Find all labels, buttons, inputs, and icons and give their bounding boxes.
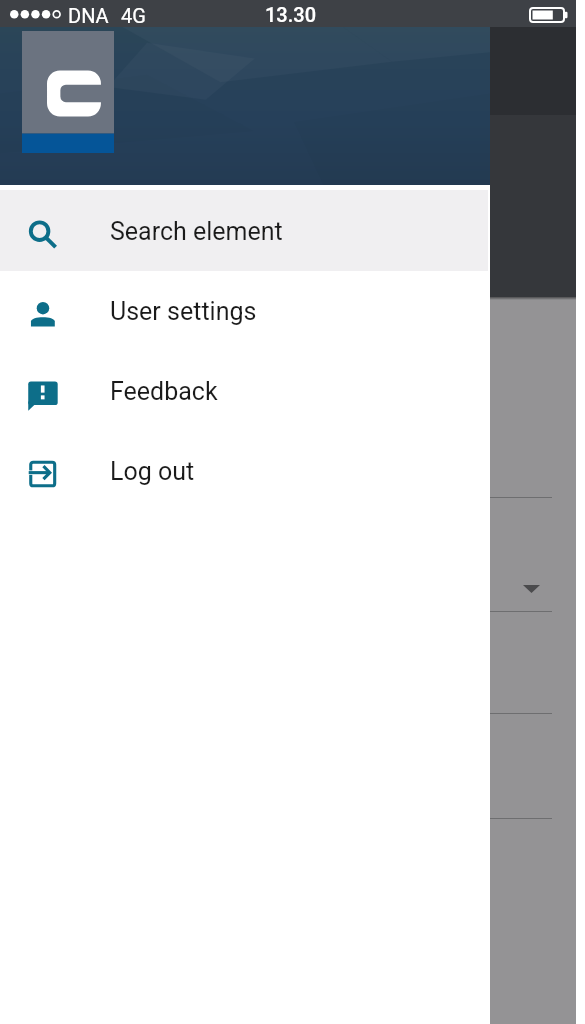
- staticText: Feedback: [110, 377, 218, 406]
- staticText: User settings: [110, 297, 257, 326]
- button[interactable]: User settings: [0, 270, 490, 350]
- staticText: 13.30: [265, 3, 317, 26]
- button[interactable]: Feedback: [0, 350, 490, 430]
- staticText: Log out: [110, 457, 195, 486]
- other: Log out: [26, 456, 58, 488]
- staticText: Search element: [110, 217, 283, 246]
- other: Feedback: [26, 376, 58, 408]
- other: Search: [26, 216, 58, 248]
- other: User settings: [26, 296, 58, 328]
- button[interactable]: Search: [0, 190, 490, 270]
- button[interactable]: Log out: [0, 430, 490, 510]
- staticText: DNA: [68, 4, 109, 27]
- staticText: 4G: [121, 4, 146, 27]
